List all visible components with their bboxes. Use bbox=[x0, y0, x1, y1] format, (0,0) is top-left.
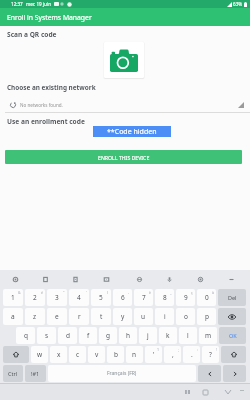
button[interactable]: Home bbox=[197, 384, 213, 400]
staticText: 4 bbox=[77, 293, 81, 302]
button[interactable]: 9 bbox=[176, 289, 195, 306]
button[interactable]: a bbox=[3, 308, 23, 325]
button[interactable]: d bbox=[58, 327, 77, 344]
button[interactable]: o bbox=[176, 308, 195, 325]
button[interactable]: More bbox=[236, 384, 248, 396]
button[interactable]: Del bbox=[218, 289, 246, 306]
staticText: k bbox=[166, 331, 170, 340]
button[interactable]: 0 bbox=[197, 289, 216, 306]
staticText: p bbox=[205, 312, 209, 321]
button[interactable]: Ctrl bbox=[3, 365, 23, 382]
button[interactable]: Clipboard bbox=[36, 270, 54, 288]
button[interactable]: m bbox=[199, 327, 217, 344]
staticText: Del bbox=[228, 294, 237, 301]
button[interactable]: Shift bbox=[3, 346, 29, 363]
staticText: n bbox=[132, 350, 137, 359]
button[interactable]: x bbox=[50, 346, 67, 363]
staticText: 63% bbox=[233, 1, 243, 7]
staticText: ! bbox=[216, 347, 217, 352]
button[interactable]: Show password bbox=[218, 308, 246, 325]
staticText: 0 bbox=[205, 293, 209, 302]
staticText: q bbox=[24, 331, 28, 340]
button[interactable]: GIF bbox=[97, 270, 115, 288]
button[interactable]: 3 bbox=[47, 289, 67, 306]
button[interactable]: No networks found. bbox=[0, 98, 250, 112]
button[interactable]: Settings bbox=[6, 270, 24, 288]
button[interactable]: g bbox=[99, 327, 117, 344]
button[interactable]: Next bbox=[223, 365, 246, 382]
button[interactable]: ? bbox=[202, 346, 219, 363]
staticText: l bbox=[187, 331, 189, 340]
staticText: à bbox=[212, 290, 214, 295]
staticText: . bbox=[191, 350, 193, 359]
button[interactable]: . bbox=[183, 346, 200, 363]
button[interactable]: Voice input bbox=[160, 270, 178, 288]
staticText: 9 bbox=[184, 293, 188, 302]
button[interactable]: u bbox=[134, 308, 153, 325]
button[interactable]: s bbox=[37, 327, 56, 344]
button[interactable]: w bbox=[31, 346, 48, 363]
button[interactable]: Scan QR code with camera bbox=[104, 42, 144, 78]
button[interactable]: y bbox=[113, 308, 132, 325]
staticText: é bbox=[41, 290, 43, 295]
button[interactable]: k bbox=[159, 327, 177, 344]
button[interactable]: f bbox=[79, 327, 97, 344]
button[interactable]: Stickers bbox=[66, 270, 84, 288]
button[interactable]: h bbox=[119, 327, 137, 344]
staticText: 6 bbox=[121, 293, 125, 302]
button[interactable]: c bbox=[69, 346, 86, 363]
staticText: 2 bbox=[33, 293, 37, 302]
staticText: OK bbox=[229, 332, 237, 339]
button[interactable]: b bbox=[107, 346, 124, 363]
staticText: g bbox=[106, 331, 110, 340]
button[interactable]: OK bbox=[219, 327, 246, 344]
button[interactable]: 5 bbox=[91, 289, 111, 306]
button[interactable]: n bbox=[126, 346, 143, 363]
button[interactable]: r bbox=[69, 308, 89, 325]
button[interactable]: 8 bbox=[155, 289, 174, 306]
staticText: Ctrl bbox=[8, 370, 18, 377]
staticText: m bbox=[205, 331, 212, 340]
button[interactable]: 7 bbox=[134, 289, 153, 306]
button[interactable]: l bbox=[179, 327, 197, 344]
button[interactable]: z bbox=[25, 308, 45, 325]
button[interactable]: More options bbox=[222, 270, 240, 288]
button[interactable]: 4 bbox=[69, 289, 89, 306]
button[interactable]: p bbox=[197, 308, 216, 325]
staticText: 5 bbox=[99, 293, 103, 302]
button[interactable]: 1 bbox=[3, 289, 23, 306]
button[interactable]: , bbox=[164, 346, 181, 363]
button[interactable]: Previous bbox=[198, 365, 221, 382]
button[interactable]: 2 bbox=[25, 289, 45, 306]
button[interactable]: j bbox=[139, 327, 157, 344]
staticText: è bbox=[149, 290, 151, 295]
button[interactable]: Recent apps bbox=[179, 384, 195, 400]
button[interactable]: Translate bbox=[130, 270, 148, 288]
staticText: o bbox=[184, 312, 188, 321]
button[interactable]: Hide keyboard bbox=[220, 384, 236, 400]
staticText: 7 bbox=[142, 293, 146, 302]
button[interactable]: e bbox=[47, 308, 67, 325]
button[interactable]: t bbox=[91, 308, 111, 325]
staticText: !#1 bbox=[31, 370, 40, 377]
button[interactable]: **Code hidden bbox=[93, 126, 171, 137]
staticText: y bbox=[121, 312, 125, 321]
button[interactable]: Emoji bbox=[191, 270, 209, 288]
button[interactable]: Shift bbox=[221, 346, 246, 363]
button[interactable]: !#1 bbox=[25, 365, 46, 382]
button[interactable]: ENROLL THIS DEVICE bbox=[5, 150, 242, 164]
staticText: s bbox=[45, 331, 49, 340]
staticText: w bbox=[37, 350, 43, 359]
button[interactable]: Français (FR) bbox=[48, 365, 196, 382]
staticText: Enroll in Systems Manager bbox=[7, 13, 92, 22]
staticText: d bbox=[66, 331, 70, 340]
button[interactable]: q bbox=[16, 327, 35, 344]
button[interactable]: 6 bbox=[113, 289, 132, 306]
button[interactable]: i bbox=[155, 308, 174, 325]
button[interactable]: ' bbox=[145, 346, 162, 363]
staticText: Use an enrollment code bbox=[7, 117, 85, 126]
staticText: u bbox=[141, 312, 146, 321]
staticText: mer. 19 juin bbox=[26, 1, 51, 7]
button[interactable]: v bbox=[88, 346, 105, 363]
staticText: : bbox=[197, 347, 198, 352]
